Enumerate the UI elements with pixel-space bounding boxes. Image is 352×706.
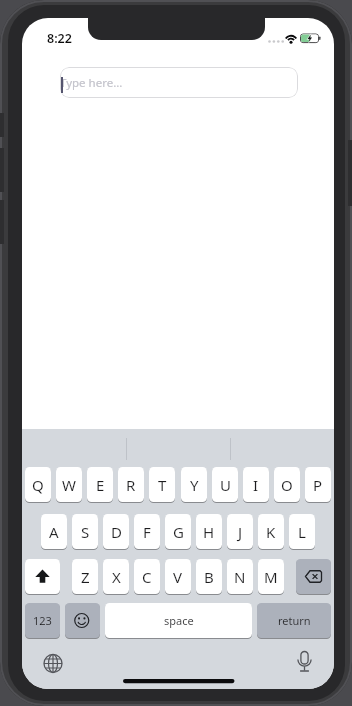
button[interactable]: S [72,514,98,549]
button[interactable]: L [289,514,315,549]
staticText: V [173,567,183,587]
button[interactable]: space [105,603,252,638]
staticText: I [253,475,259,495]
button[interactable]: D [103,514,129,549]
staticText: K [266,522,276,542]
button[interactable]: Type here... [60,67,298,98]
button[interactable]: P [305,467,331,502]
button[interactable] [296,559,331,594]
staticText: S [81,522,90,542]
button[interactable]: I [243,467,269,502]
staticText: Z [81,567,90,587]
button[interactable]: Y [181,467,207,502]
staticText: P [313,475,323,495]
staticText: return [278,613,311,628]
staticText: Y [190,475,199,495]
button[interactable]: K [258,514,284,549]
button[interactable] [39,649,67,677]
button[interactable]: M [258,559,284,594]
button[interactable] [65,603,100,638]
staticText: X [112,567,121,587]
button[interactable]: O [274,467,300,502]
staticText: G [173,522,184,542]
button[interactable]: A [41,514,67,549]
staticText: C [142,567,152,587]
staticText: T [158,475,167,495]
staticText: O [281,475,293,495]
staticText: U [220,475,231,495]
button[interactable]: C [134,559,160,594]
staticText: M [264,567,278,587]
button[interactable] [290,649,318,677]
staticText: space [164,613,194,628]
button[interactable]: return [257,603,331,638]
staticText: H [203,522,215,542]
staticText: F [143,522,151,542]
staticText: W [62,475,76,495]
button[interactable]: W [56,467,82,502]
staticText: R [126,475,136,495]
button[interactable]: Q [25,467,51,502]
button[interactable]: Z [72,559,98,594]
button[interactable]: X [103,559,129,594]
staticText: N [234,567,246,587]
staticText: A [49,522,59,542]
button[interactable]: N [227,559,253,594]
button[interactable]: U [212,467,238,502]
staticText: J [238,522,243,542]
button[interactable]: 123 [25,603,60,638]
staticText: L [298,522,306,542]
button[interactable]: F [134,514,160,549]
staticText: B [204,567,214,587]
button[interactable]: V [165,559,191,594]
button[interactable]: J [227,514,253,549]
staticText: E [96,475,105,495]
staticText: 8:22 [47,30,72,47]
staticText: 123 [33,613,52,628]
staticText: D [111,522,122,542]
button[interactable]: G [165,514,191,549]
staticText: Type here... [60,75,123,91]
button[interactable]: B [196,559,222,594]
button[interactable]: R [118,467,144,502]
button[interactable]: H [196,514,222,549]
button[interactable]: E [87,467,113,502]
button[interactable]: T [149,467,175,502]
button[interactable] [25,559,60,594]
staticText: Q [32,475,44,495]
